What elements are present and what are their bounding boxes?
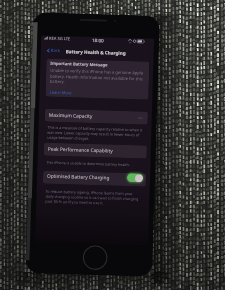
button[interactable]: Learn More (49, 90, 73, 96)
staticText: Optimised Battery Charging (47, 173, 110, 181)
staticText: Learn More (49, 90, 73, 96)
staticText: Peak Performance Capability (48, 146, 113, 155)
button[interactable]: Back (46, 47, 62, 55)
staticText: Maximum Capacity (49, 112, 93, 120)
staticText: Unable to verify this iPhone has a genui… (50, 68, 145, 86)
staticText: Important Battery Message (50, 61, 108, 68)
button[interactable] (43, 170, 146, 186)
staticText: REA 5G LTE (49, 36, 71, 41)
staticText: Battery Health & Charging (66, 48, 126, 56)
button[interactable]: Optimised Battery Charging (127, 173, 143, 182)
staticText: 18:00 (92, 37, 104, 43)
button[interactable]: Home (82, 245, 108, 270)
staticText: — (138, 114, 143, 121)
staticText: This iPhone is unable to determine batte… (46, 160, 141, 167)
staticText: To reduce battery ageing, iPhone learns … (45, 189, 141, 206)
staticText: Back (51, 48, 61, 54)
staticText: This is a measure of battery capacity re… (47, 125, 142, 142)
button[interactable] (45, 59, 149, 100)
button[interactable] (45, 109, 148, 125)
button[interactable] (44, 143, 147, 159)
